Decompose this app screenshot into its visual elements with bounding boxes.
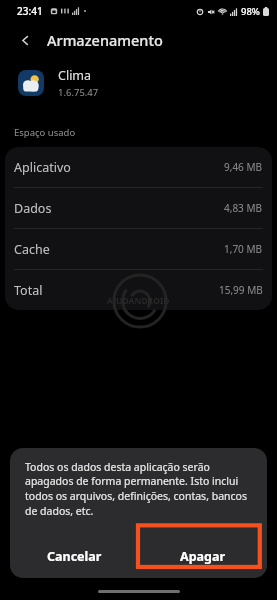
staticText: Limpar cache xyxy=(166,566,224,578)
button[interactable]: Cancelar xyxy=(10,534,138,578)
staticText: 15,99 MB xyxy=(219,283,263,297)
staticText: Armazenamento xyxy=(47,30,163,50)
staticText: Todos os dados desta aplicação serão apa… xyxy=(25,460,252,518)
button[interactable]: Total xyxy=(5,270,272,310)
staticText: Aplicativo xyxy=(14,159,71,176)
button[interactable]: Dados xyxy=(5,188,272,229)
staticText: Cache xyxy=(14,241,50,258)
staticText: 1.6.75.47 xyxy=(58,86,99,99)
staticText: 9,46 MB xyxy=(224,160,263,174)
button[interactable]: Cache xyxy=(5,229,272,270)
staticText: Total xyxy=(14,282,43,299)
staticText: 23:41 xyxy=(17,4,43,18)
button[interactable]: Aplicativo xyxy=(5,147,272,188)
staticText: 4,83 MB xyxy=(224,201,263,215)
staticText: AJUDANDROID xyxy=(107,295,170,307)
staticText: 98% xyxy=(241,5,260,18)
staticText: Cancelar xyxy=(47,548,102,565)
button[interactable]: Back xyxy=(14,29,36,51)
staticText: Dados xyxy=(14,200,52,217)
staticText: 1,70 MB xyxy=(224,242,263,256)
button[interactable]: Apagar xyxy=(138,534,267,578)
staticText: Espaço usado xyxy=(14,126,76,139)
staticText: Clima xyxy=(58,67,92,84)
staticText: Apagar xyxy=(180,548,226,565)
